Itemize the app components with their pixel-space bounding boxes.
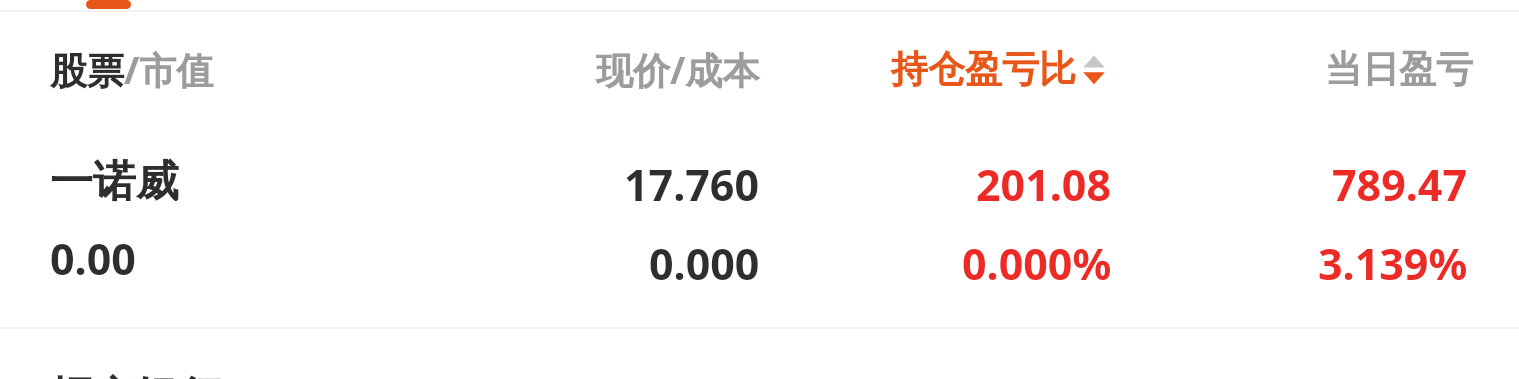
staticText: 持仓盈亏比 — [891, 46, 1076, 93]
button[interactable]: 一诺威 — [0, 155, 1519, 327]
button[interactable]: 持仓盈亏比 — [790, 34, 1112, 104]
button[interactable]: 现价/成本 — [430, 34, 760, 104]
button[interactable]: Selected tab — [86, 0, 131, 9]
button[interactable]: 招商银行 — [0, 329, 1519, 379]
staticText: 招商银行 — [50, 371, 222, 379]
button[interactable]: 当日盈亏 — [1140, 34, 1473, 104]
staticText: 0.000% — [962, 234, 1112, 293]
staticText: 17.760 — [624, 155, 760, 214]
staticText: 789.47 — [1332, 155, 1468, 214]
staticText: 0.00 — [50, 229, 136, 288]
other: Sort by position profit ratio — [1076, 47, 1112, 91]
staticText: 0.000 — [649, 234, 760, 293]
staticText: 201.08 — [976, 155, 1112, 214]
staticText: 一诺威 — [50, 155, 179, 209]
staticText: 3.139% — [1318, 234, 1468, 293]
button[interactable]: 股票/市值 — [0, 34, 420, 104]
staticText: 股票/市值 — [50, 44, 214, 95]
staticText: 当日盈亏 — [1325, 46, 1473, 93]
staticText: 现价/成本 — [596, 44, 760, 95]
